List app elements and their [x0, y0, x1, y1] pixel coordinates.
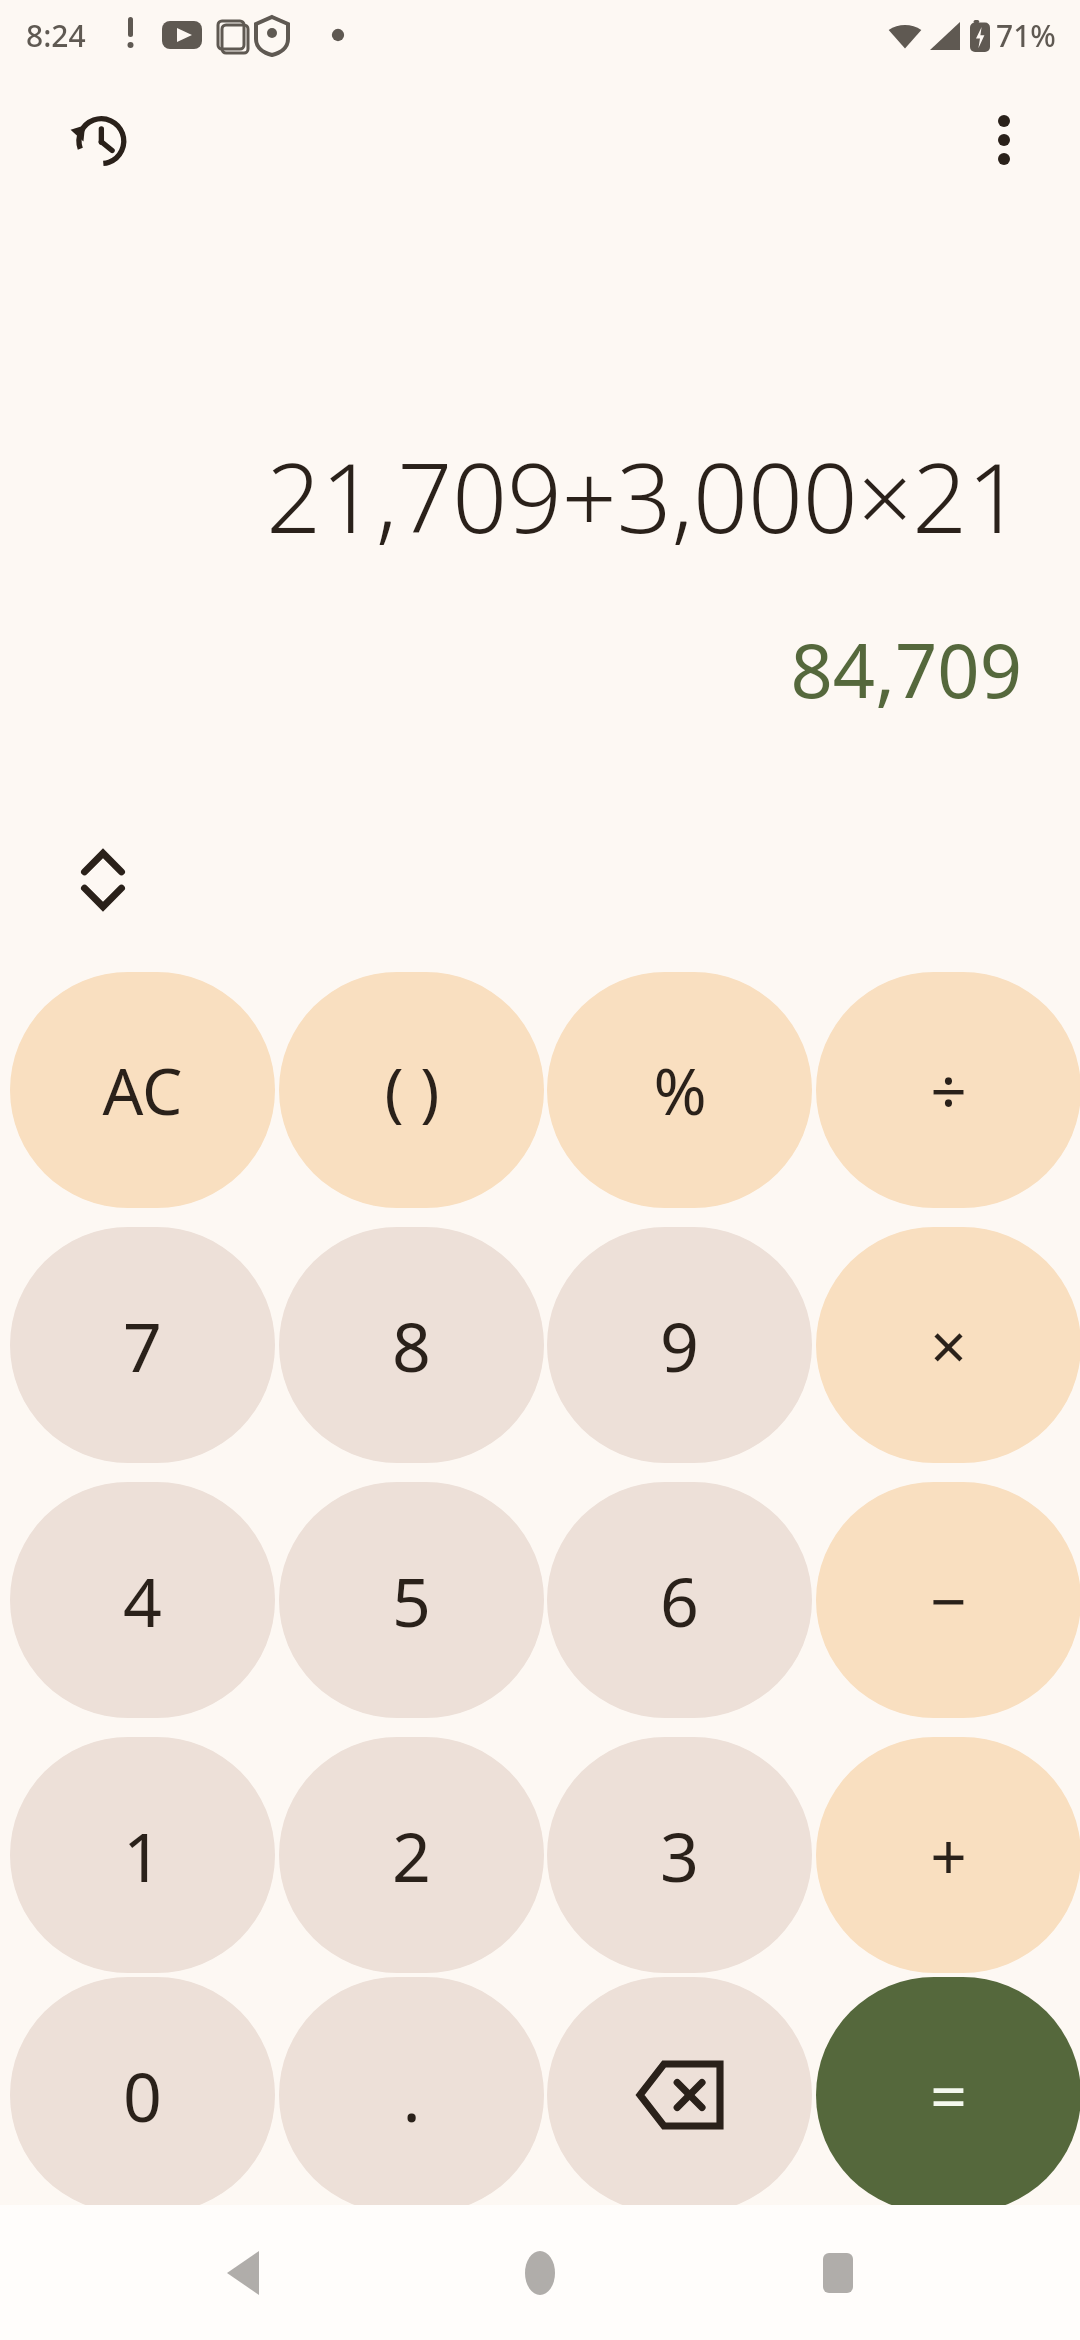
button[interactable]: 0 [10, 1977, 275, 2213]
button[interactable]: 1 [10, 1737, 275, 1973]
staticText: − [930, 1557, 967, 1644]
button[interactable]: AC [10, 972, 275, 1208]
staticText: + [930, 1812, 967, 1899]
staticText: 7 [123, 1299, 162, 1392]
button[interactable]: 4 [10, 1482, 275, 1718]
button[interactable]: 9 [547, 1227, 812, 1463]
button[interactable]: More options [956, 92, 1052, 188]
button[interactable]: Back [188, 2218, 298, 2328]
staticText: 8:24 [26, 15, 86, 56]
staticText: . [402, 2049, 421, 2142]
button[interactable]: Recents [783, 2218, 893, 2328]
button[interactable]: 8 [279, 1227, 544, 1463]
button[interactable]: × [816, 1227, 1080, 1463]
staticText: × [930, 1302, 967, 1389]
staticText: 6 [660, 1554, 699, 1647]
staticText: AC [102, 1047, 183, 1134]
button[interactable]: + [816, 1737, 1080, 1973]
staticText: ÷ [930, 1047, 967, 1134]
button[interactable]: 6 [547, 1482, 812, 1718]
staticText: = [930, 2052, 967, 2139]
button[interactable]: 5 [279, 1482, 544, 1718]
staticText: 21,709+3,000×21 [266, 430, 1022, 561]
button[interactable]: Expand [55, 832, 151, 928]
button[interactable]: . [279, 1977, 544, 2213]
button[interactable]: 2 [279, 1737, 544, 1973]
button[interactable]: History [50, 92, 146, 188]
button[interactable]: 7 [10, 1227, 275, 1463]
button[interactable]: Home [485, 2218, 595, 2328]
staticText: 8 [392, 1299, 431, 1392]
staticText: 3 [660, 1809, 699, 1902]
button[interactable]: − [816, 1482, 1080, 1718]
staticText: 5 [392, 1554, 431, 1647]
button[interactable]: % [547, 972, 812, 1208]
staticText: 0 [123, 2049, 162, 2142]
button[interactable]: ( ) [279, 972, 544, 1208]
staticText: 84,709 [790, 619, 1022, 720]
staticText: % [653, 1047, 707, 1134]
staticText: 4 [123, 1554, 162, 1647]
button[interactable]: Backspace [547, 1977, 812, 2213]
button[interactable]: = [816, 1977, 1080, 2213]
button[interactable]: ÷ [816, 972, 1080, 1208]
staticText: 9 [660, 1299, 699, 1392]
staticText: 71% [996, 15, 1056, 56]
staticText: ( ) [384, 1047, 440, 1134]
staticText: 1 [123, 1809, 162, 1902]
staticText: 2 [392, 1809, 431, 1902]
button[interactable]: 3 [547, 1737, 812, 1973]
